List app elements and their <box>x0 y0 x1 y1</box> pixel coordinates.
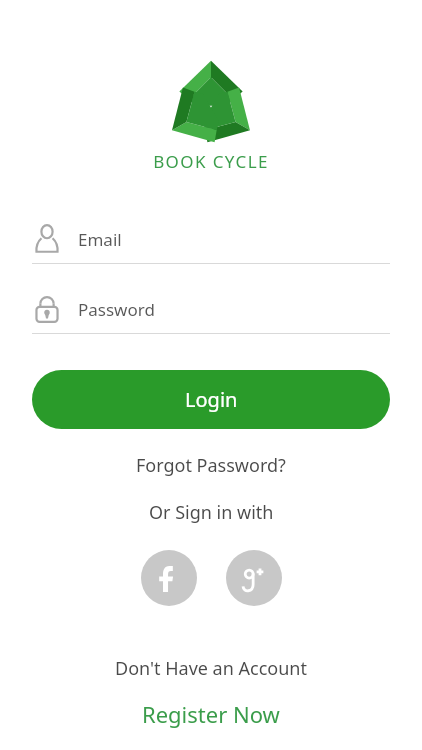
button[interactable]: Register Now <box>130 697 292 731</box>
button[interactable]: Sign in with Google Plus <box>226 550 282 606</box>
staticText: Or Sign in with <box>149 500 274 525</box>
staticText: BOOK CYCLE <box>153 150 269 173</box>
button[interactable]: Email <box>32 215 390 263</box>
staticText: Forgot Password? <box>136 453 286 478</box>
other: Password <box>32 294 62 324</box>
button[interactable]: Password <box>32 285 390 333</box>
button[interactable]: Forgot Password? <box>124 449 298 482</box>
button[interactable]: Login <box>32 370 390 429</box>
staticText: Login <box>185 386 238 413</box>
staticText: Email <box>78 228 122 251</box>
staticText: Don't Have an Account <box>115 656 307 681</box>
button[interactable]: Sign in with Facebook <box>141 550 197 606</box>
other: Email <box>32 224 62 254</box>
staticText: Password <box>78 298 155 321</box>
staticText: Register Now <box>142 699 280 729</box>
